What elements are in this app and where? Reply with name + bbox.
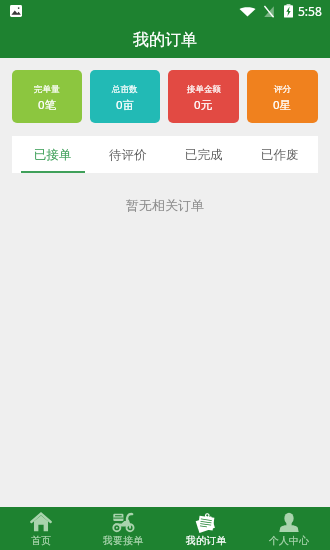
staticText: 0笔	[38, 97, 57, 113]
staticText: 已作废	[261, 147, 299, 163]
button[interactable]: 个人中心	[247, 507, 330, 550]
staticText: 5:58	[298, 3, 322, 19]
staticText: 接单金额	[187, 84, 221, 95]
staticText: 我的订单	[186, 534, 226, 547]
button[interactable]: 已作废	[242, 136, 318, 173]
staticText: 已完成	[185, 147, 223, 163]
button[interactable]: 已完成	[166, 136, 242, 173]
button[interactable]: 已接单	[15, 136, 90, 173]
staticText: 待评价	[109, 147, 147, 163]
staticText: 我的订单	[133, 30, 197, 50]
staticText: 0元	[194, 97, 213, 113]
button[interactable]: 完单量	[12, 70, 82, 123]
button[interactable]: 待评价	[90, 136, 166, 173]
button[interactable]: 评分	[247, 70, 318, 123]
staticText: 我要接单	[103, 534, 143, 547]
staticText: 完单量	[34, 84, 60, 95]
staticText: 0亩	[116, 97, 135, 113]
button[interactable]: 首页	[0, 507, 82, 550]
staticText: 0星	[273, 97, 292, 113]
button[interactable]: 我的订单	[164, 507, 247, 550]
button[interactable]: 我要接单	[82, 507, 164, 550]
staticText: 首页	[31, 534, 51, 547]
staticText: 个人中心	[269, 534, 309, 547]
button[interactable]: 接单金额	[168, 70, 239, 123]
button[interactable]: 总亩数	[90, 70, 160, 123]
staticText: 暂无相关订单	[0, 197, 330, 213]
staticText: 评分	[274, 84, 291, 95]
staticText: 总亩数	[112, 84, 138, 95]
staticText: 已接单	[34, 147, 72, 163]
